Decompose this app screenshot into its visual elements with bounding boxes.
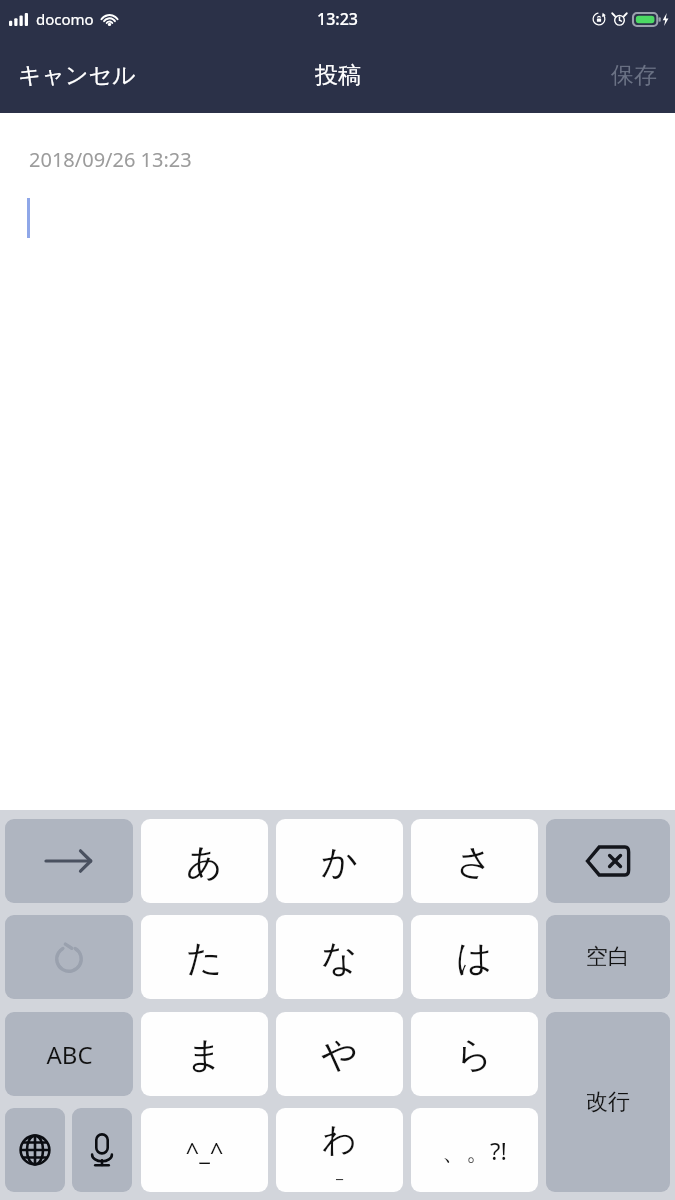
staticText: 、。?!	[442, 1134, 507, 1167]
button[interactable]: ^_^	[141, 1108, 268, 1192]
staticText: 投稿	[315, 61, 361, 90]
staticText: 改行	[586, 1088, 630, 1116]
staticText: あ	[186, 839, 223, 884]
staticText: た	[186, 935, 223, 980]
button[interactable]: 改行	[546, 1012, 670, 1192]
staticText: ま	[186, 1032, 223, 1077]
staticText: _	[336, 1161, 344, 1183]
staticText: ら	[456, 1032, 493, 1077]
button[interactable]: ら	[411, 1012, 538, 1096]
button[interactable]: あ	[141, 819, 268, 903]
button[interactable]: Switch keyboard	[5, 1108, 65, 1192]
staticText: 空白	[586, 943, 630, 971]
button[interactable]: た	[141, 915, 268, 999]
staticText: docomo	[36, 9, 94, 29]
button[interactable]: Undo	[5, 915, 133, 999]
button[interactable]: 空白	[546, 915, 670, 999]
staticText: わ	[322, 1118, 357, 1161]
button[interactable]: 保存	[593, 38, 675, 113]
button[interactable]: わ	[276, 1108, 403, 1192]
staticText: は	[456, 935, 493, 980]
staticText: 2018/09/26 13:23	[29, 146, 192, 173]
button[interactable]: さ	[411, 819, 538, 903]
button[interactable]: か	[276, 819, 403, 903]
staticText: ABC	[46, 1038, 93, 1071]
button[interactable]: は	[411, 915, 538, 999]
staticText: や	[321, 1032, 358, 1077]
staticText: さ	[456, 839, 493, 884]
button[interactable]: Voice input	[72, 1108, 132, 1192]
staticText: 保存	[611, 61, 657, 90]
button[interactable]: や	[276, 1012, 403, 1096]
staticText: キャンセル	[18, 61, 136, 90]
button[interactable]: な	[276, 915, 403, 999]
button[interactable]: Next candidate	[5, 819, 133, 903]
button[interactable]: ま	[141, 1012, 268, 1096]
button[interactable]: キャンセル	[0, 38, 154, 113]
staticText: ^_^	[185, 1134, 224, 1167]
button[interactable]: 、。?!	[411, 1108, 538, 1192]
staticText: な	[321, 935, 358, 980]
button[interactable]: Delete	[546, 819, 670, 903]
staticText: 13:23	[317, 8, 358, 30]
button[interactable]: 2018/09/26 13:23	[0, 113, 675, 810]
button[interactable]: ABC	[5, 1012, 133, 1096]
staticText: か	[321, 839, 358, 884]
